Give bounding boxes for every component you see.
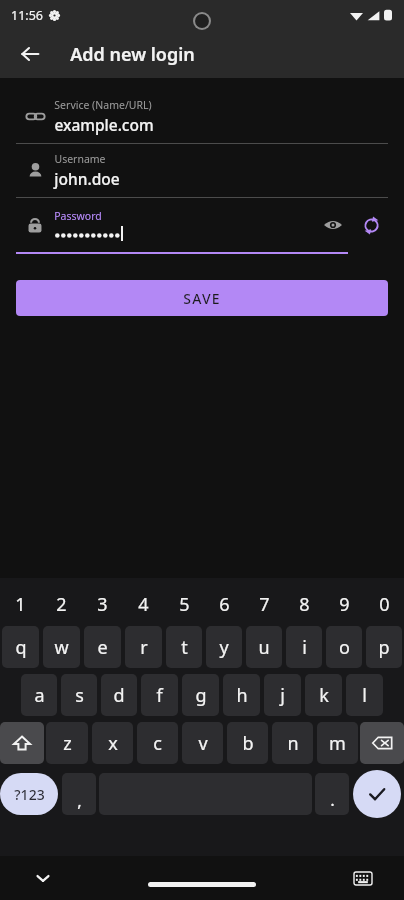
- staticText: t: [181, 635, 188, 660]
- button[interactable]: z: [46, 722, 88, 764]
- staticText: w: [54, 635, 69, 660]
- button[interactable]: l: [346, 674, 383, 716]
- staticText: l: [362, 683, 367, 708]
- button[interactable]: 4: [123, 582, 164, 626]
- button[interactable]: 1: [0, 582, 41, 626]
- staticText: a: [34, 683, 45, 708]
- staticText: p: [378, 635, 390, 660]
- button[interactable]: w: [43, 626, 80, 668]
- button[interactable]: p: [366, 626, 402, 668]
- button[interactable]: u: [246, 626, 282, 668]
- staticText: b: [242, 731, 254, 756]
- staticText: e: [97, 635, 108, 660]
- button[interactable]: v: [182, 722, 223, 764]
- button[interactable]: b: [227, 722, 268, 764]
- staticText: john.doe: [54, 168, 120, 189]
- staticText: 2: [56, 592, 67, 617]
- button[interactable]: a: [21, 674, 57, 716]
- staticText: Username: [54, 152, 106, 166]
- button[interactable]: q: [2, 626, 39, 668]
- button[interactable]: 3: [82, 582, 123, 626]
- button[interactable]: 0: [364, 582, 404, 626]
- button[interactable]: Username: [0, 144, 404, 197]
- staticText: SAVE: [183, 289, 221, 308]
- button[interactable]: x: [92, 722, 133, 764]
- staticText: Password: [54, 209, 102, 223]
- button[interactable]: 6: [204, 582, 244, 626]
- staticText: Add new login: [70, 42, 195, 67]
- button[interactable]: 5: [164, 582, 204, 626]
- button[interactable]: .: [315, 773, 349, 815]
- button[interactable]: y: [206, 626, 242, 668]
- button[interactable]: c: [137, 722, 178, 764]
- button[interactable]: t: [166, 626, 202, 668]
- button[interactable]: Show password: [316, 208, 350, 242]
- button[interactable]: Hide keyboard: [28, 863, 58, 893]
- staticText: c: [153, 731, 162, 756]
- button[interactable]: j: [264, 674, 301, 716]
- button[interactable]: ?123: [0, 773, 58, 815]
- staticText: j: [280, 683, 285, 708]
- staticText: y: [219, 635, 229, 660]
- staticText: 4: [138, 592, 149, 617]
- staticText: o: [339, 635, 350, 660]
- button[interactable]: Back: [10, 34, 50, 74]
- staticText: n: [287, 731, 299, 756]
- button[interactable]: d: [101, 674, 137, 716]
- staticText: u: [258, 635, 270, 660]
- staticText: 5: [179, 592, 190, 617]
- button[interactable]: 7: [244, 582, 284, 626]
- button[interactable]: Switch keyboard: [348, 863, 378, 893]
- button[interactable]: n: [272, 722, 313, 764]
- staticText: z: [63, 731, 72, 756]
- staticText: ?123: [14, 785, 45, 804]
- button[interactable]: m: [317, 722, 358, 764]
- staticText: example.com: [54, 114, 154, 135]
- button[interactable]: h: [223, 674, 260, 716]
- staticText: f: [156, 683, 163, 708]
- staticText: d: [113, 683, 125, 708]
- staticText: 1: [15, 592, 26, 617]
- button[interactable]: r: [125, 626, 162, 668]
- staticText: .: [330, 788, 335, 811]
- staticText: k: [319, 683, 329, 708]
- button[interactable]: k: [305, 674, 342, 716]
- button[interactable]: e: [84, 626, 121, 668]
- button[interactable]: o: [326, 626, 362, 668]
- staticText: h: [236, 683, 248, 708]
- button[interactable]: 8: [284, 582, 324, 626]
- button[interactable]: 2: [41, 582, 82, 626]
- staticText: s: [75, 683, 84, 708]
- staticText: i: [302, 635, 307, 660]
- staticText: 11:56: [11, 7, 43, 24]
- staticText: 7: [259, 592, 270, 617]
- staticText: 3: [97, 592, 108, 617]
- button[interactable]: Generate password: [354, 208, 388, 242]
- button[interactable]: Enter: [353, 770, 401, 818]
- button[interactable]: Shift: [0, 722, 44, 764]
- button[interactable]: Backspace: [360, 722, 404, 764]
- staticText: 9: [339, 592, 350, 617]
- staticText: r: [140, 635, 148, 660]
- button[interactable]: SAVE: [16, 280, 388, 316]
- staticText: x: [108, 731, 118, 756]
- staticText: 8: [299, 592, 310, 617]
- button[interactable]: s: [61, 674, 97, 716]
- staticText: Service (Name/URL): [54, 98, 152, 112]
- staticText: v: [198, 731, 208, 756]
- staticText: ,: [77, 789, 82, 812]
- button[interactable]: i: [286, 626, 322, 668]
- button[interactable]: Service (Name/URL): [0, 90, 404, 143]
- button[interactable]: ,: [62, 773, 96, 815]
- button[interactable]: 9: [324, 582, 364, 626]
- staticText: m: [329, 731, 346, 756]
- staticText: g: [195, 683, 207, 708]
- staticText: 6: [219, 592, 230, 617]
- staticText: 0: [379, 592, 390, 617]
- button[interactable]: g: [182, 674, 219, 716]
- staticText: q: [15, 635, 27, 660]
- button[interactable]: f: [141, 674, 178, 716]
